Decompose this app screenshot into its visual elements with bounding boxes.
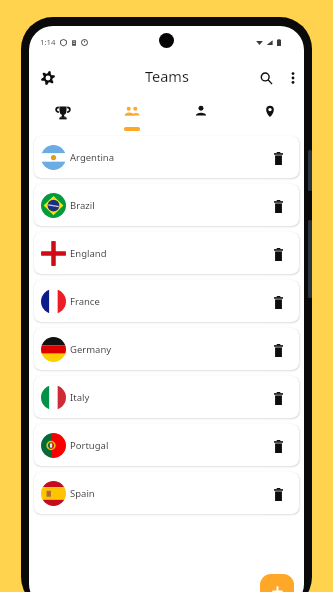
button[interactable]: Italy	[34, 376, 299, 418]
button[interactable]: Settings	[35, 65, 61, 91]
button[interactable]: Delete Argentina	[267, 147, 289, 169]
staticText: Argentina	[70, 151, 115, 164]
button[interactable]: Delete England	[267, 243, 289, 265]
button[interactable]: Delete Portugal	[267, 435, 289, 457]
button[interactable]: Delete France	[267, 291, 289, 313]
staticText: Spain	[70, 487, 95, 500]
button[interactable]: Tournaments	[29, 98, 97, 132]
staticText: England	[70, 247, 107, 260]
button[interactable]: Spain	[34, 472, 299, 514]
button[interactable]: Delete Germany	[267, 339, 289, 361]
staticText: Teams	[145, 66, 189, 86]
button[interactable]: Delete Brazil	[267, 195, 289, 217]
staticText: Italy	[70, 391, 90, 404]
staticText: Germany	[70, 343, 112, 356]
staticText: Brazil	[70, 199, 95, 212]
button[interactable]: More options	[280, 65, 304, 91]
staticText: 1:14	[40, 37, 56, 48]
button[interactable]: Add team	[260, 574, 294, 592]
button[interactable]: Delete Italy	[267, 387, 289, 409]
button[interactable]: Portugal	[34, 424, 299, 466]
staticText: France	[70, 295, 100, 308]
button[interactable]: England	[34, 232, 299, 274]
button[interactable]: Delete Spain	[267, 483, 289, 505]
button[interactable]: Search	[253, 65, 279, 91]
button[interactable]: Argentina	[34, 136, 299, 178]
button[interactable]: Germany	[34, 328, 299, 370]
button[interactable]: Players	[166, 98, 235, 132]
button[interactable]: France	[34, 280, 299, 322]
staticText: Portugal	[70, 439, 109, 452]
button[interactable]: Teams	[97, 98, 166, 132]
button[interactable]: Venues	[235, 98, 304, 132]
button[interactable]: Brazil	[34, 184, 299, 226]
